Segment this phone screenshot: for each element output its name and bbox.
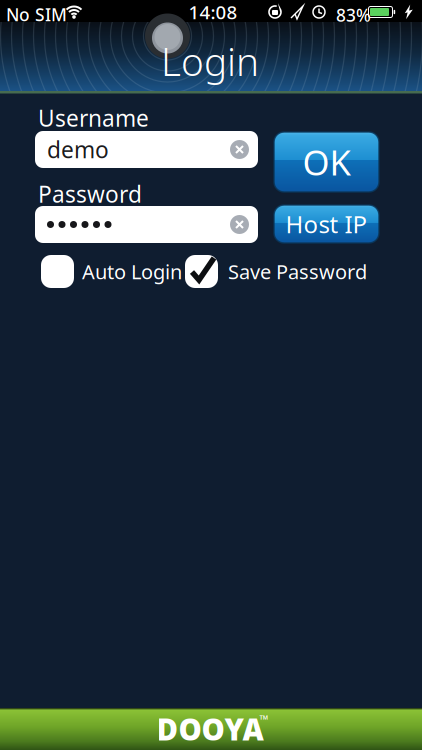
- button[interactable]: Auto Login: [41, 255, 182, 288]
- staticText: demo: [47, 134, 109, 164]
- staticText: No SIM: [6, 3, 67, 26]
- staticText: 83%: [336, 3, 371, 26]
- button[interactable]: Host IP: [274, 205, 379, 243]
- staticText: Auto Login: [82, 258, 182, 285]
- button[interactable]: [35, 206, 258, 243]
- staticText: Host IP: [285, 208, 367, 240]
- button[interactable]: OK: [274, 132, 379, 192]
- staticText: Username: [38, 103, 149, 133]
- staticText: ™: [259, 711, 268, 727]
- staticText: Password: [38, 179, 142, 209]
- button[interactable]: [230, 215, 249, 234]
- staticText: Login: [161, 35, 259, 87]
- staticText: 14:08: [188, 0, 237, 24]
- staticText: Save Password: [228, 258, 367, 285]
- button[interactable]: demo: [35, 131, 258, 168]
- staticText: OK: [302, 139, 350, 185]
- button[interactable]: Save Password: [185, 255, 367, 288]
- staticText: DOOYA: [156, 709, 263, 748]
- button[interactable]: [230, 140, 249, 159]
